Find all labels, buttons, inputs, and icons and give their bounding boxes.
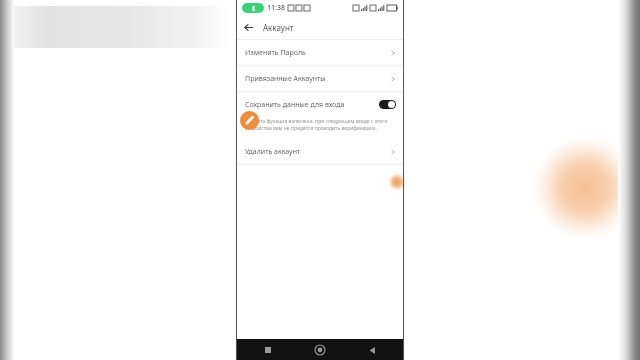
button[interactable]: Удалить аккаунт bbox=[237, 139, 403, 164]
staticText: Привязанные Аккаунты bbox=[245, 74, 326, 84]
button[interactable]: Home bbox=[311, 341, 329, 359]
staticText: Изменить Пароль bbox=[245, 48, 306, 58]
staticText: Сохранить данные для входа bbox=[245, 100, 345, 110]
button[interactable]: Edit bbox=[240, 111, 259, 130]
button[interactable]: Сохранить данные для входа bbox=[237, 92, 403, 117]
staticText: Удалить аккаунт bbox=[245, 147, 301, 157]
button[interactable]: Привязанные Аккаунты bbox=[237, 66, 403, 91]
staticText: 11:38 bbox=[267, 3, 285, 13]
staticText: Если эта функция включена, при следующем… bbox=[245, 118, 395, 131]
button[interactable]: Back bbox=[237, 16, 260, 39]
staticText: Аккаунт bbox=[263, 22, 294, 33]
button[interactable]: Recents bbox=[259, 341, 277, 359]
button[interactable]: Изменить Пароль bbox=[237, 40, 403, 65]
button[interactable]: Back bbox=[363, 341, 381, 359]
